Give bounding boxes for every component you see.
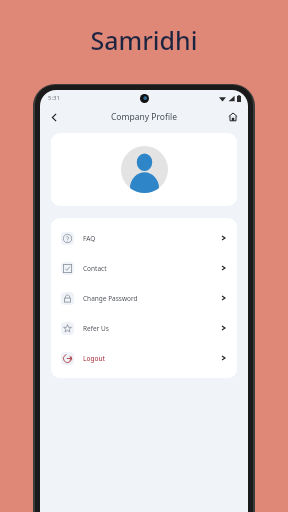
staticText: Change Password	[83, 294, 138, 303]
staticText: Refer Us	[83, 324, 109, 333]
staticText: Contact	[83, 264, 107, 273]
staticText: 5:31	[48, 94, 60, 102]
button[interactable]: Back	[45, 108, 63, 126]
staticText: FAQ	[83, 234, 96, 243]
staticText: Logout	[83, 354, 106, 363]
button[interactable]: Logout	[51, 343, 237, 373]
button[interactable]: Refer Us	[51, 313, 237, 343]
staticText: Company Profile	[111, 111, 177, 123]
button[interactable]: Change Password	[51, 283, 237, 313]
button[interactable]: Home	[224, 108, 242, 126]
button[interactable]: Contact	[51, 253, 237, 283]
button[interactable]: FAQ	[51, 223, 237, 253]
staticText: Samridhi	[0, 23, 288, 57]
